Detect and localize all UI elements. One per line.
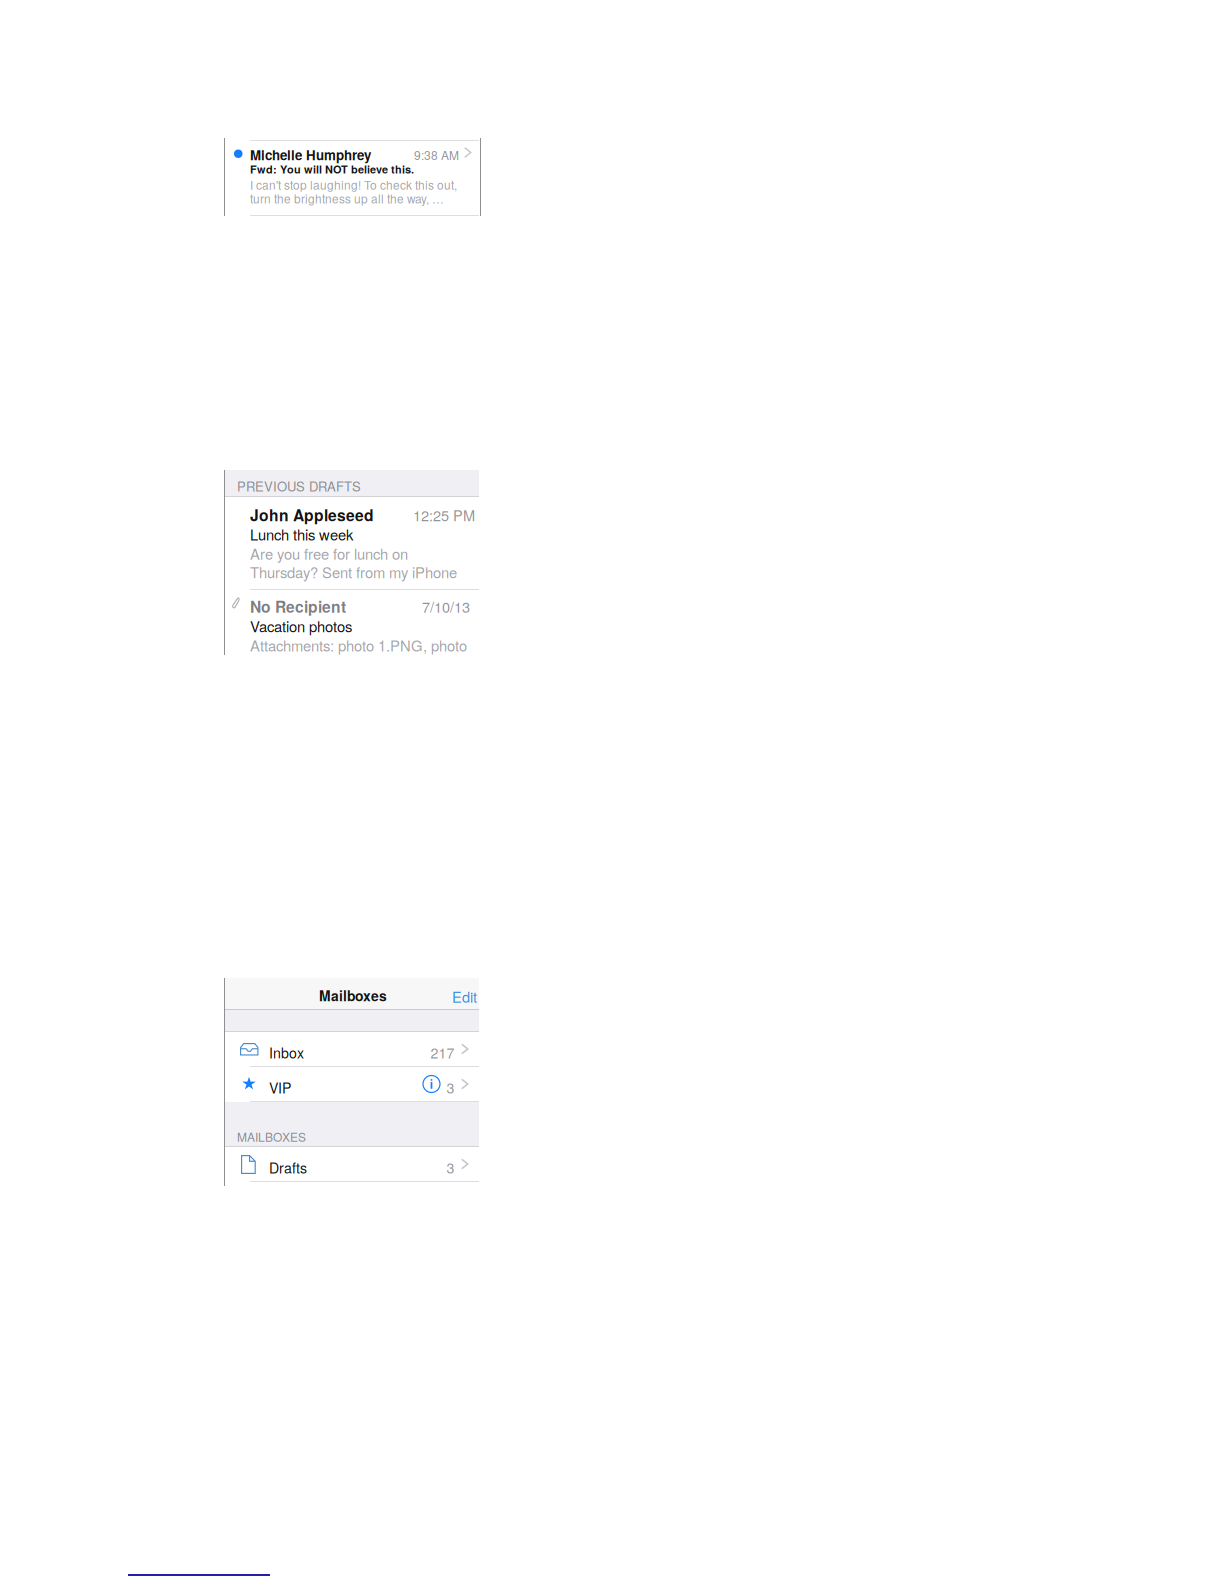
staticText: Mailboxes — [319, 986, 387, 1005]
button[interactable]: VIP — [225, 1067, 479, 1102]
button[interactable]: John Appleseed — [225, 497, 479, 589]
staticText: I can't stop laughing! To check this out… — [250, 176, 457, 193]
button[interactable]: Drafts — [225, 1147, 479, 1182]
button[interactable]: Michelle Humphrey — [225, 138, 479, 216]
button[interactable]: No Recipient — [225, 588, 479, 652]
staticText: Fwd: You will NOT believe this. — [250, 161, 414, 177]
staticText: 217 — [430, 1042, 454, 1063]
staticText: 3 — [446, 1157, 454, 1178]
staticText: MAILBOXES — [237, 1128, 306, 1145]
staticText: Lunch this week — [250, 524, 353, 545]
staticText: VIP — [269, 1077, 291, 1098]
staticText: Thursday? Sent from my iPhone — [250, 561, 457, 582]
staticText: John Appleseed — [250, 504, 374, 526]
button[interactable]: Edit — [447, 981, 482, 1012]
staticText: Attachments: photo 1.PNG, photo — [250, 634, 467, 656]
staticText: 9:38 AM — [414, 146, 459, 163]
staticText: Are you free for lunch on — [250, 543, 408, 564]
staticText: Drafts — [269, 1157, 307, 1178]
staticText: Michelle Humphrey — [250, 145, 371, 164]
staticText: turn the brightness up all the way, … — [250, 190, 444, 207]
staticText: 3 — [446, 1077, 454, 1098]
staticText: Vacation photos — [250, 615, 352, 636]
button[interactable]: Inbox — [225, 1032, 479, 1067]
staticText: 12:25 PM — [413, 505, 475, 525]
staticText: No Recipient — [250, 595, 346, 617]
staticText: Edit — [452, 986, 477, 1007]
staticText: Inbox — [269, 1042, 304, 1063]
staticText: 7/10/13 — [422, 596, 470, 617]
staticText: PREVIOUS DRAFTS — [237, 476, 361, 495]
